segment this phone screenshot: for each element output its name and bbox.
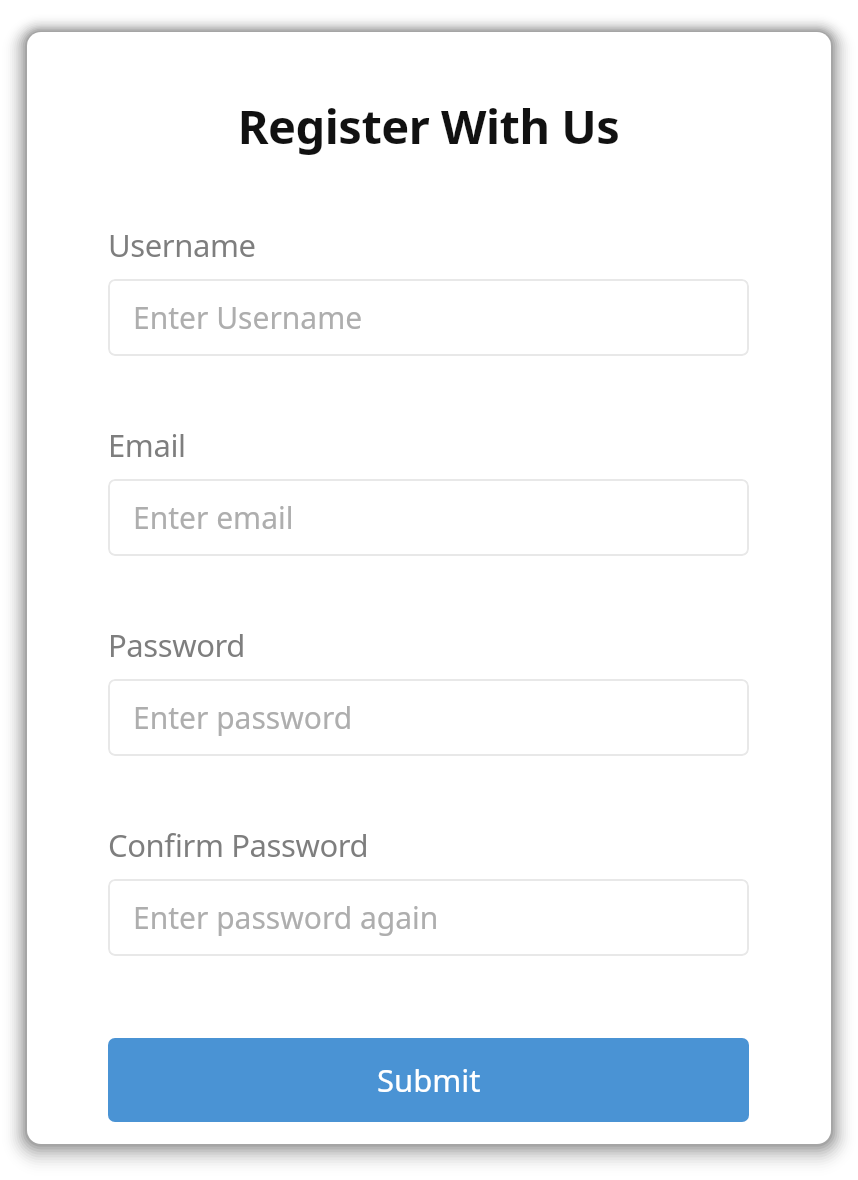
staticText: Confirm Password [108,824,369,866]
staticText: Enter password again [133,897,439,938]
button[interactable]: Submit [108,1038,749,1122]
staticText: Enter password [133,697,353,738]
button[interactable]: Enter Username [108,279,749,356]
button[interactable]: Enter password again [108,879,749,956]
staticText: Username [108,224,256,266]
button[interactable]: Enter email [108,479,749,556]
staticText: Register With Us [108,94,749,158]
button[interactable]: Enter password [108,679,749,756]
staticText: Enter Username [133,297,363,338]
staticText: Submit [377,1059,481,1101]
staticText: Email [108,424,186,466]
staticText: Enter email [133,497,294,538]
staticText: Password [108,624,246,666]
